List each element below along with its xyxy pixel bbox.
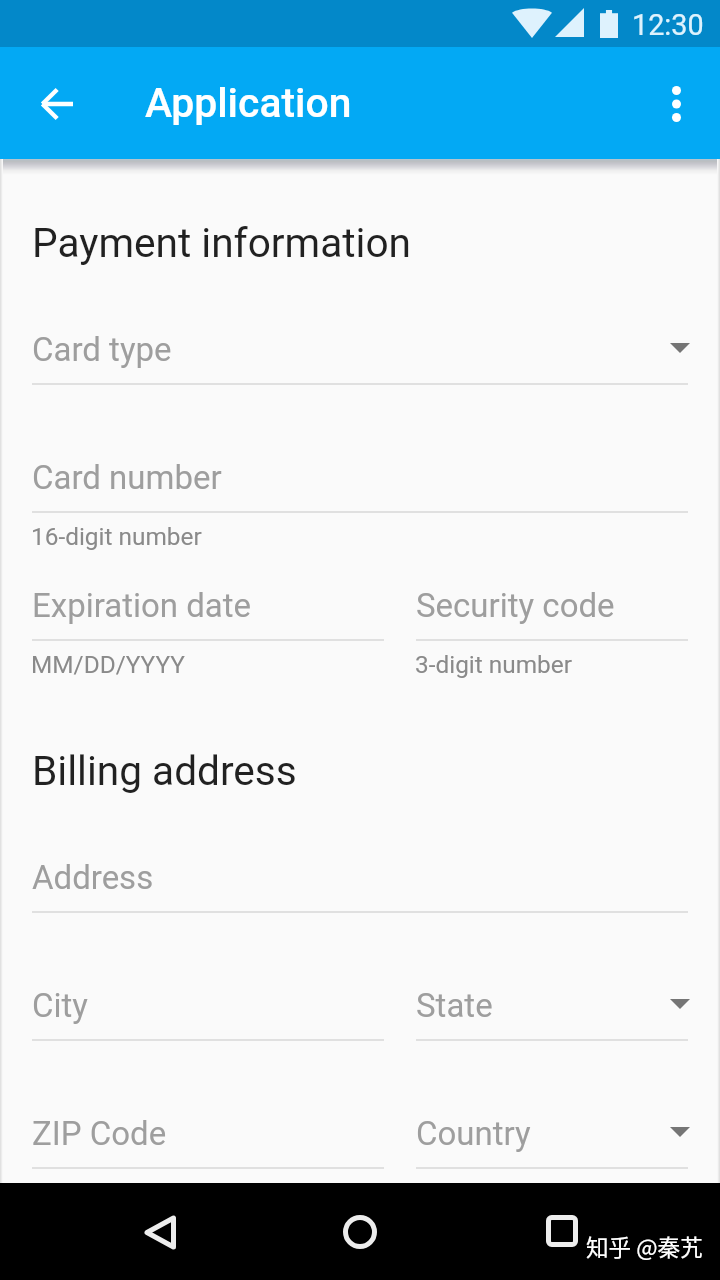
staticText: Billing address	[32, 747, 297, 795]
staticText: 16-digit number	[31, 522, 202, 551]
staticText: Address	[32, 858, 154, 897]
button[interactable]: Country	[416, 1114, 688, 1192]
button[interactable]: Expiration date	[32, 586, 384, 664]
staticText: Country	[416, 1114, 531, 1153]
staticText: ZIP Code	[32, 1114, 167, 1153]
button[interactable]: Card number	[32, 458, 688, 536]
button[interactable]: Back	[112, 1199, 208, 1265]
staticText: 知乎 @秦艽	[586, 1230, 703, 1263]
button[interactable]: Navigate up	[8, 56, 104, 152]
button[interactable]: Card type	[32, 330, 688, 408]
staticText: City	[32, 986, 88, 1025]
staticText: 12:30	[632, 8, 704, 42]
button[interactable]: Address	[32, 858, 688, 936]
button[interactable]: City	[32, 986, 384, 1064]
staticText: Expiration date	[32, 586, 252, 625]
staticText: Security code	[416, 586, 615, 625]
staticText: Application	[145, 79, 352, 127]
staticText: Card number	[32, 458, 222, 497]
staticText: 3-digit number	[415, 650, 572, 679]
staticText: Payment information	[32, 219, 411, 267]
button[interactable]: Security code	[416, 586, 688, 664]
button[interactable]: Recent apps	[514, 1198, 610, 1264]
staticText: Card type	[32, 330, 172, 369]
staticText: State	[416, 986, 493, 1025]
button[interactable]: Home	[312, 1199, 408, 1265]
staticText: MM/DD/YYYY	[31, 650, 185, 679]
button[interactable]: More options	[628, 56, 720, 152]
button[interactable]: ZIP Code	[32, 1114, 384, 1192]
button[interactable]: State	[416, 986, 688, 1064]
